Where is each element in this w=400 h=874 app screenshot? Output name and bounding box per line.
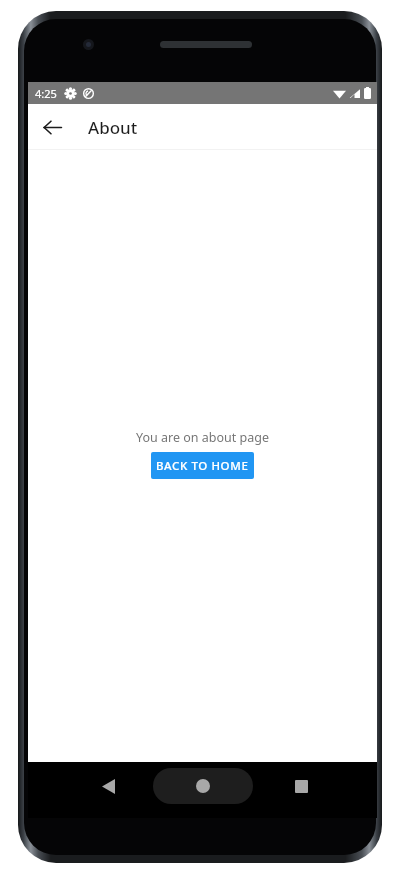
staticText: BACK TO HOME — [156, 458, 249, 474]
button[interactable]: Back — [90, 768, 126, 804]
button[interactable]: Back — [32, 107, 72, 147]
button[interactable]: Home — [153, 768, 253, 804]
button[interactable]: Recents — [283, 768, 319, 804]
button[interactable]: BACK TO HOME — [151, 452, 254, 479]
staticText: You are on about page — [136, 429, 269, 446]
staticText: 4:25 — [35, 86, 57, 101]
staticText: About — [88, 116, 138, 139]
